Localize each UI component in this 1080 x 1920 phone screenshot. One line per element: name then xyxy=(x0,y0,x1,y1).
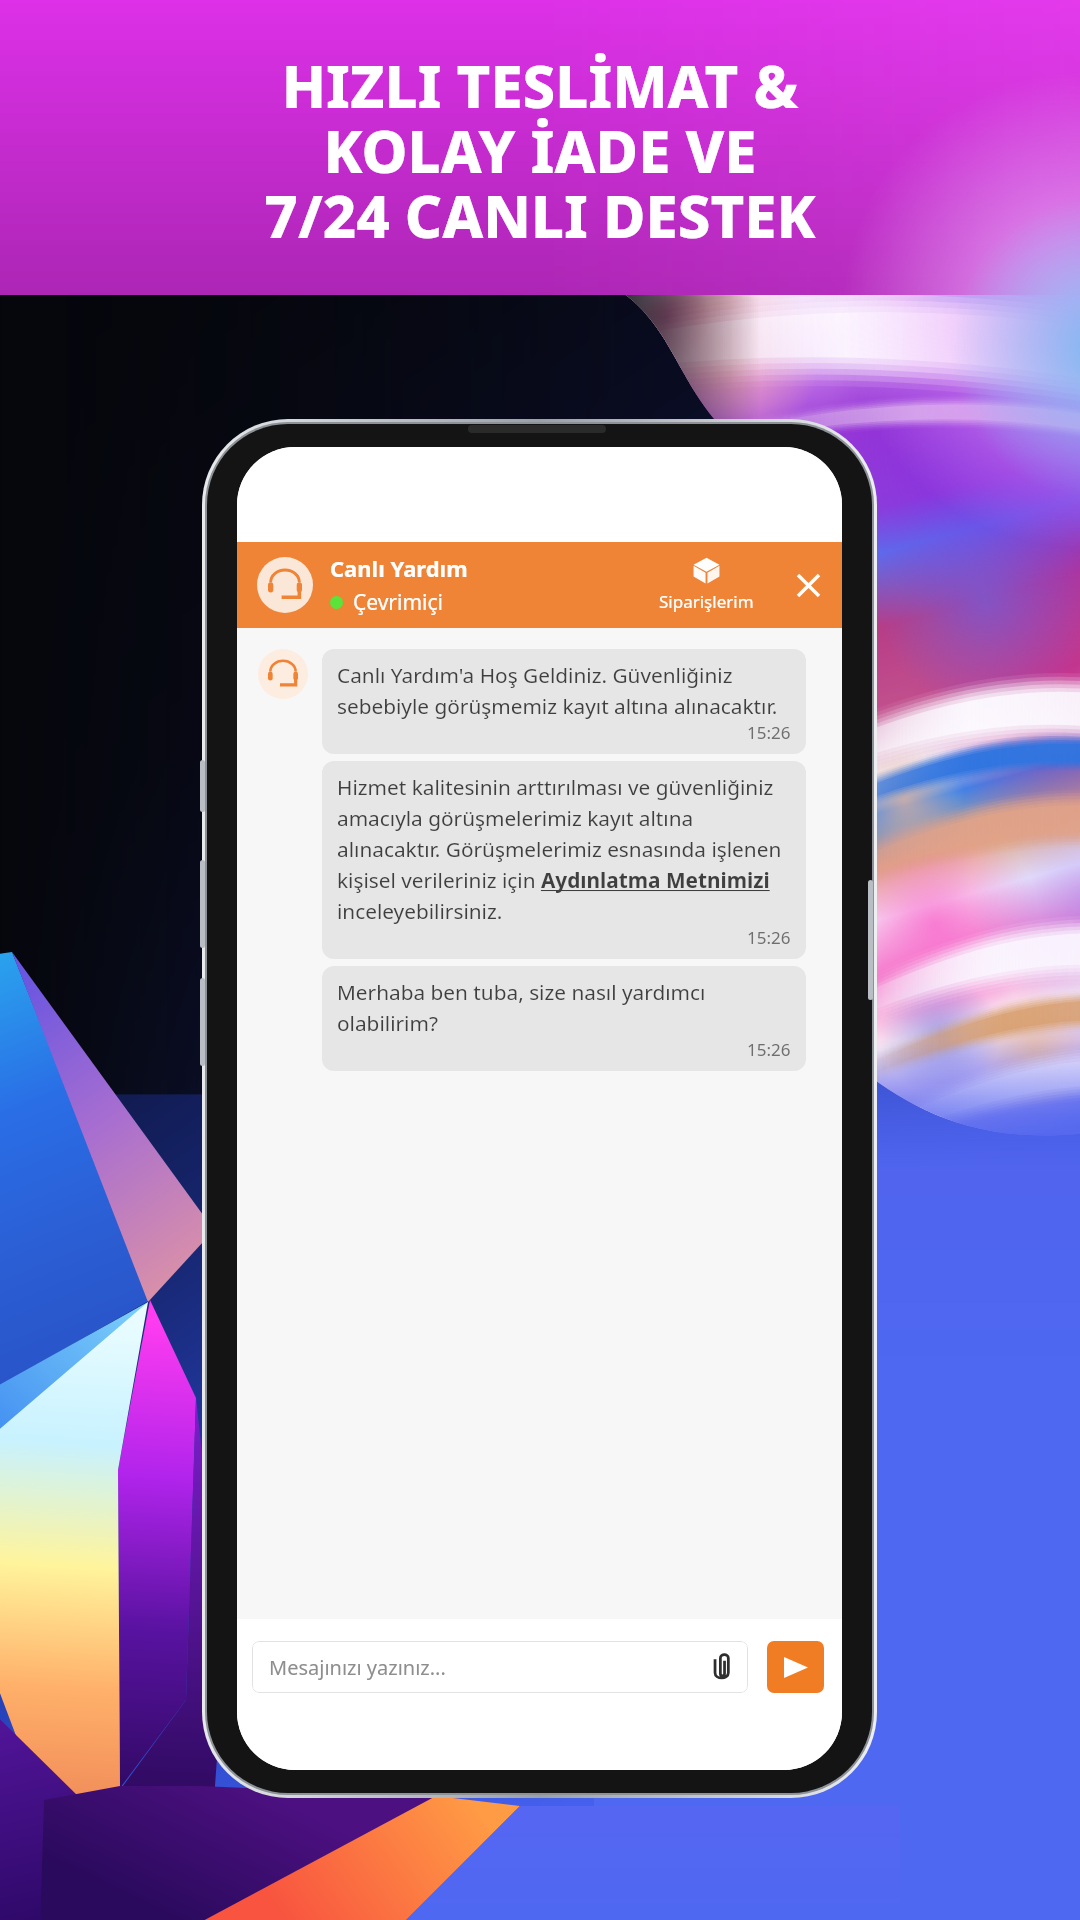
button[interactable]: Kapat xyxy=(786,563,830,607)
button[interactable]: Hizmet kalitesinin arttırılması ve güven… xyxy=(322,761,806,959)
button[interactable]: Canlı Yardım xyxy=(257,553,468,617)
button[interactable]: Gönder xyxy=(767,1641,824,1693)
staticText: HIZLI TESLİMAT & KOLAY İADE VE 7/24 CANL… xyxy=(0,46,1080,255)
button[interactable]: Merhaba ben tuba, size nasıl yardımcı ol… xyxy=(322,966,806,1071)
staticText: Hizmet kalitesinin arttırılması ve güven… xyxy=(337,773,791,925)
staticText: Siparişlerim xyxy=(659,590,754,613)
staticText: Canlı Yardım xyxy=(330,553,468,583)
staticText: 15:26 xyxy=(747,926,791,949)
staticText: Mesajınızı yazınız... xyxy=(269,1654,446,1681)
button[interactable]: Canlı Yardım'a Hoş Geldiniz. Güvenliğini… xyxy=(322,649,806,754)
staticText: 15:26 xyxy=(747,1038,791,1061)
button[interactable]: Mesajınızı yazınız... xyxy=(252,1641,748,1693)
button[interactable]: Dosya ekle xyxy=(707,1653,735,1681)
staticText: Çevrimiçi xyxy=(353,588,444,617)
staticText: Canlı Yardım'a Hoş Geldiniz. Güvenliğini… xyxy=(337,661,791,720)
staticText: 15:26 xyxy=(747,721,791,744)
button[interactable]: Siparişlerim xyxy=(651,551,762,619)
staticText: Merhaba ben tuba, size nasıl yardımcı ol… xyxy=(337,978,791,1037)
